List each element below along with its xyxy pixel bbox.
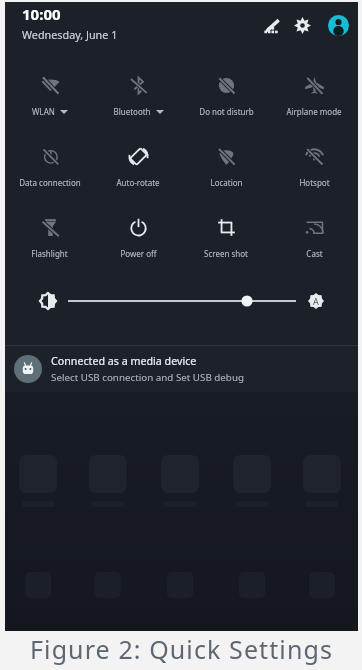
button[interactable]: WLAN [5, 52, 94, 123]
staticText: Bluetooth [113, 106, 151, 117]
button[interactable]: Auto-rotate [94, 123, 182, 194]
button[interactable]: Auto brightness [302, 287, 330, 315]
staticText: Cast [306, 248, 323, 259]
button[interactable]: Data connection [5, 123, 94, 194]
staticText: Location [210, 177, 243, 188]
staticText: Data connection [19, 177, 81, 188]
button[interactable]: Location [182, 123, 270, 194]
button[interactable]: Airplane mode [270, 52, 358, 123]
staticText: Airplane mode [286, 106, 342, 117]
staticText: WLAN [32, 106, 55, 117]
button[interactable]: Cast [270, 194, 358, 265]
staticText: Flashlight [31, 248, 68, 259]
staticText: Wednesday, June 1 [22, 27, 118, 42]
staticText: Auto-rotate [116, 177, 160, 188]
button[interactable]: Power off [94, 194, 182, 265]
button[interactable]: Brightness [34, 287, 62, 315]
staticText: Select USB connection and Set USB debug [51, 371, 244, 384]
staticText: Hotspot [299, 177, 330, 188]
button[interactable]: Hotspot [270, 123, 358, 194]
button[interactable]: Settings [289, 12, 315, 38]
button[interactable]: Edit tiles [258, 12, 284, 38]
button[interactable]: Bluetooth [94, 52, 182, 123]
staticText: Connected as a media device [51, 354, 197, 369]
staticText: A [313, 295, 319, 307]
button[interactable]: Do not disturb [182, 52, 270, 123]
button[interactable]: Screen shot [182, 194, 270, 265]
staticText: Power off [120, 248, 157, 259]
staticText: Do not disturb [199, 106, 254, 117]
button[interactable]: Connected as a media device [5, 346, 358, 392]
button[interactable]: Flashlight [5, 194, 94, 265]
staticText: Screen shot [204, 248, 248, 259]
staticText: Figure 2: Quick Settings [30, 632, 333, 666]
button[interactable]: User profile [325, 12, 351, 38]
staticText: 10:00 [22, 4, 61, 24]
